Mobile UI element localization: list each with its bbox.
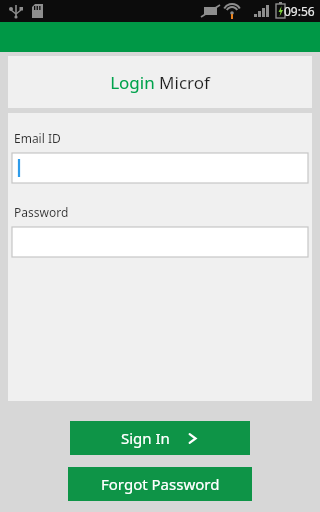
staticText: 09:56 [284, 3, 315, 19]
button[interactable]: Forgot Password [68, 467, 252, 501]
button[interactable]: Sign In [70, 421, 250, 455]
staticText: Email ID [14, 130, 61, 146]
button[interactable] [12, 227, 308, 257]
staticText: Sign In [121, 428, 170, 448]
staticText: Password [14, 204, 69, 220]
staticText: Login Microf [110, 71, 210, 94]
staticText: Forgot Password [101, 474, 220, 494]
button[interactable] [12, 153, 308, 183]
